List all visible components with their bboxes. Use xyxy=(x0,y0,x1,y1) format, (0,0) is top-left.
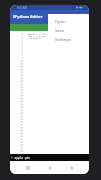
staticText: print(x) xyxy=(28,37,43,39)
button[interactable]: Open xyxy=(48,17,89,26)
button[interactable]: Back xyxy=(67,161,76,174)
staticText: IPython Editor xyxy=(13,14,43,20)
staticText: Save xyxy=(55,28,65,34)
staticText: fruits = ['a xyxy=(28,33,47,35)
button[interactable]: Save xyxy=(48,26,89,35)
staticText: Settings xyxy=(55,37,71,43)
staticText: Open xyxy=(55,19,66,25)
staticText: > apple pie xyxy=(11,156,31,160)
button[interactable]: Home xyxy=(45,161,54,174)
staticText: 9:41 AM xyxy=(17,6,27,10)
button[interactable]: IPython Editor xyxy=(10,10,89,24)
button[interactable]: Recents xyxy=(23,161,32,174)
button[interactable]: Settings xyxy=(48,35,89,44)
staticText: for x in fru xyxy=(28,35,47,37)
button[interactable]: > apple pie xyxy=(10,154,89,161)
